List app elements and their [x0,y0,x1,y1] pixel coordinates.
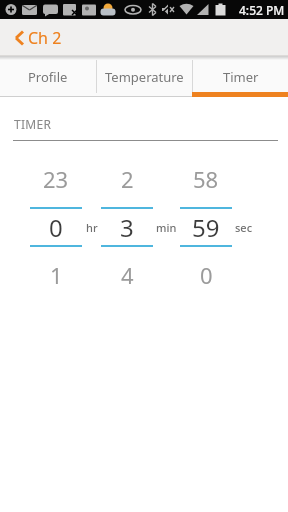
staticText: 4:52 PM [239,2,285,18]
staticText: 0 [49,211,63,244]
staticText: sec [235,220,253,235]
staticText: 3 [120,211,134,244]
staticText: 4 [121,260,134,290]
staticText: hr [86,220,98,235]
staticText: 59 [192,211,220,244]
staticText: Ch 2 [28,27,62,49]
button[interactable]: 59 [176,209,236,245]
staticText: 0 [200,260,213,290]
button[interactable]: Temperature [97,56,192,97]
staticText: Profile [28,68,68,86]
button[interactable]: Timer [193,56,288,97]
staticText: min [156,220,177,235]
button[interactable]: Profile [0,56,96,97]
staticText: 23 [43,164,69,194]
button[interactable]: 3 [97,209,157,245]
staticText: Temperature [105,68,184,86]
staticText: 1 [50,260,63,290]
button[interactable]: Ch 2 [14,27,62,49]
staticText: 2 [121,164,134,194]
staticText: 58 [193,164,219,194]
button[interactable]: 0 [26,209,86,245]
staticText: Timer [223,68,259,86]
staticText: TIMER [14,116,52,132]
